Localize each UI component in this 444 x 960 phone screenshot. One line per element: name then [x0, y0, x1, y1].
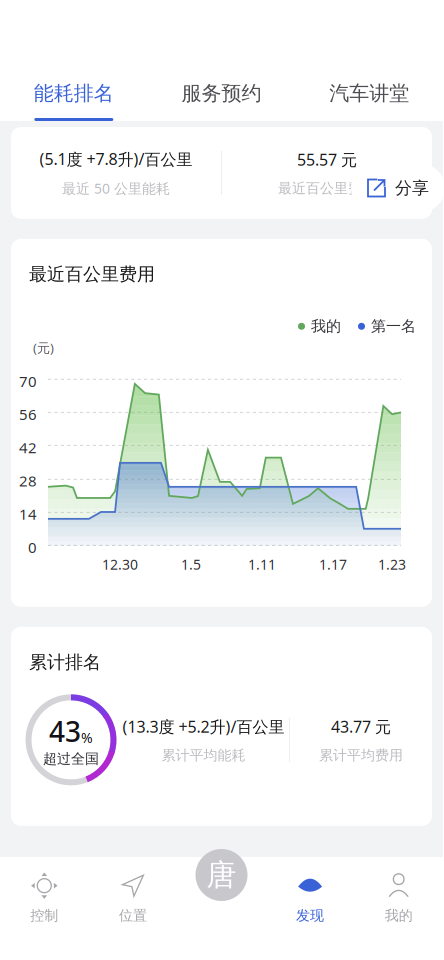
staticText: 累计平均能耗 [161, 746, 245, 764]
button[interactable]: 位置 [89, 862, 177, 924]
staticText: 第一名 [371, 317, 416, 336]
staticText: 1.23 [378, 555, 406, 574]
staticText: 0 [28, 537, 37, 557]
staticText: 1.11 [248, 555, 276, 574]
button[interactable]: 控制 [0, 862, 89, 924]
staticText: 我的 [385, 907, 413, 924]
button[interactable]: 唐 [189, 843, 253, 907]
staticText: 1.5 [181, 555, 201, 574]
staticText: 14 [19, 504, 37, 524]
staticText: 70 [19, 371, 37, 391]
staticText: 位置 [119, 907, 147, 924]
button[interactable]: 服务预约 [148, 0, 295, 121]
staticText: 累计平均费用 [319, 746, 403, 764]
staticText: 12.30 [102, 555, 138, 574]
staticText: 28 [19, 470, 37, 491]
staticText: 43 [49, 712, 81, 750]
staticText: 服务预约 [181, 81, 261, 106]
staticText: 55.57 元 [297, 149, 357, 170]
staticText: % [81, 728, 93, 747]
staticText: 1.17 [319, 555, 347, 574]
staticText: 超过全国 [43, 750, 99, 768]
button[interactable]: 分享 [349, 164, 443, 212]
staticText: 汽车讲堂 [329, 81, 409, 106]
staticText: 控制 [30, 907, 58, 924]
staticText: 我的 [311, 317, 341, 336]
staticText: 42 [19, 437, 37, 458]
staticText: 发现 [296, 907, 324, 924]
staticText: 唐 [206, 856, 236, 894]
staticText: 43.77 元 [331, 716, 391, 737]
button[interactable]: 汽车讲堂 [295, 0, 443, 121]
staticText: 56 [19, 404, 37, 424]
staticText: 分享 [395, 177, 429, 199]
staticText: 能耗排名 [34, 81, 114, 106]
staticText: 最近百公里费用 [278, 179, 376, 197]
staticText: (5.1度 +7.8升)/百公里 [39, 148, 192, 170]
button[interactable]: 我的 [354, 862, 443, 924]
staticText: 最近 50 公里能耗 [62, 179, 170, 198]
button[interactable]: 发现 [266, 862, 354, 924]
staticText: (13.3度 +5.2升)/百公里 [122, 716, 284, 737]
button[interactable]: 能耗排名 [0, 0, 148, 121]
staticText: 最近百公里费用 [29, 263, 155, 286]
staticText: (元) [33, 339, 54, 357]
staticText: 累计排名 [29, 651, 101, 674]
